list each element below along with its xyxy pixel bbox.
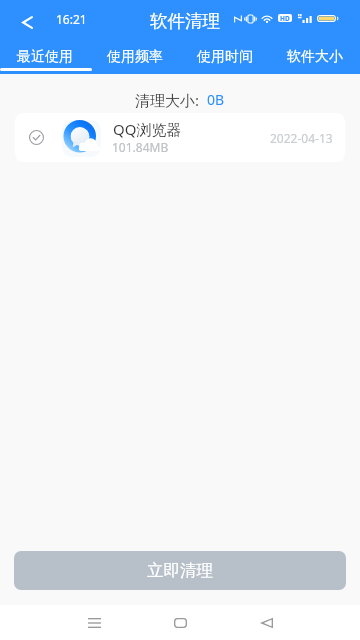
staticText: 101.84MB (112, 139, 169, 155)
button[interactable]: 立即清理 (14, 551, 346, 590)
button[interactable]: Back (244, 605, 289, 640)
staticText: 软件大小 (287, 48, 343, 66)
button[interactable]: Home (158, 605, 203, 640)
button[interactable]: Back (5, 5, 49, 39)
staticText: 软件清理 (150, 10, 220, 32)
button[interactable]: 使用频率 (90, 42, 180, 72)
staticText: QQ浏览器 (113, 119, 182, 139)
staticText: 最近使用 (17, 48, 73, 66)
staticText: 清理大小: (135, 90, 200, 108)
staticText: 使用时间 (197, 48, 253, 66)
staticText: 立即清理 (147, 560, 213, 581)
button[interactable]: 使用时间 (180, 42, 270, 72)
button[interactable]: Recent apps (72, 605, 117, 640)
button[interactable]: QQ浏览器 (15, 113, 345, 162)
button[interactable]: 最近使用 (0, 42, 90, 72)
staticText: 使用频率 (107, 48, 163, 66)
staticText: 0B (207, 90, 225, 108)
button[interactable]: 软件大小 (270, 42, 360, 72)
staticText: 2022-04-13 (270, 130, 333, 146)
staticText: HD (280, 14, 290, 22)
staticText: 16:21 (56, 11, 87, 27)
